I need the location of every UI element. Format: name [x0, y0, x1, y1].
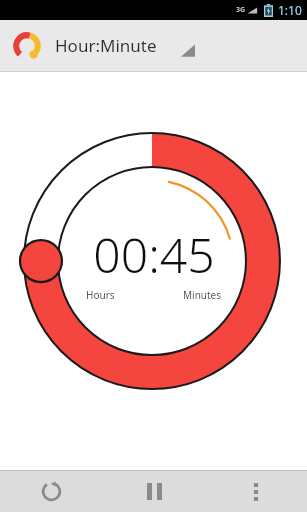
staticText: Hour:Minute — [55, 34, 157, 57]
other: Open timer mode menu — [175, 34, 199, 58]
button[interactable]: 00:45 — [86, 222, 222, 302]
button[interactable]: Reset timer — [0, 471, 103, 512]
staticText: Minutes — [183, 288, 222, 302]
staticText: 3G — [236, 5, 246, 15]
staticText: 00:45 — [93, 222, 215, 287]
button[interactable]: Pause timer — [103, 471, 205, 512]
staticText: Hours — [86, 288, 115, 302]
button[interactable]: Hour:Minute — [0, 20, 307, 71]
button[interactable]: More options — [205, 471, 307, 512]
staticText: 1:10 — [278, 2, 302, 18]
